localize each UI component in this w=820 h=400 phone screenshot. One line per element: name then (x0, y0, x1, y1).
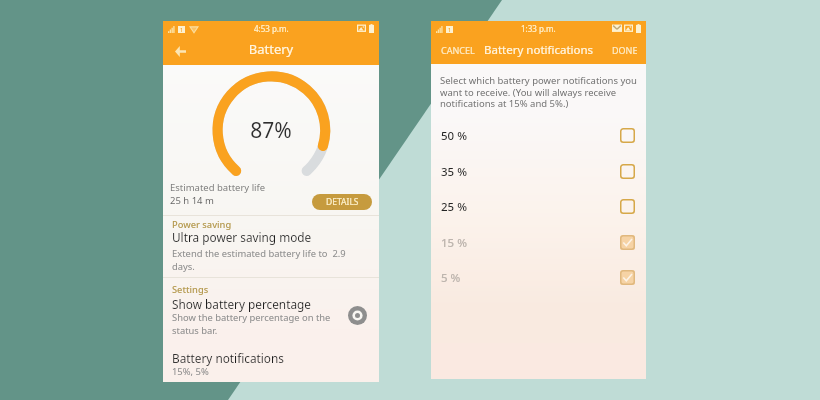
button[interactable]: Battery notifications (172, 350, 284, 366)
staticText: 15 % (441, 235, 467, 251)
staticText: 87% (163, 116, 379, 145)
staticText: Select which battery power notifications… (440, 74, 637, 110)
button[interactable]: 35 % (431, 154, 646, 189)
staticText: DONE (612, 44, 638, 56)
staticText: Power saving (172, 218, 232, 231)
staticText: 35 % (441, 164, 467, 180)
staticText: 50 % (441, 128, 467, 144)
button[interactable]: 50 % (431, 118, 646, 153)
staticText: DETAILS (326, 196, 359, 208)
button[interactable]: Show battery percentage option (348, 306, 367, 325)
button[interactable]: 25 % (431, 189, 646, 224)
button[interactable]: DONE (612, 44, 638, 56)
staticText: Ultra power saving mode (172, 229, 312, 245)
staticText: Estimated battery life (170, 181, 266, 194)
staticText: 1 (448, 26, 452, 33)
button[interactable]: 15 % (431, 225, 646, 260)
staticText: 4:53 p.m. (254, 23, 289, 34)
staticText: 25 h 14 m (170, 194, 214, 207)
staticText: Show battery percentage (172, 296, 311, 312)
staticText: Extend the estimated battery life to 2.9… (172, 247, 346, 272)
staticText: Battery notifications (484, 42, 594, 58)
staticText: Settings (172, 283, 209, 296)
button[interactable]: CANCEL (441, 44, 475, 56)
staticText: Show the battery percentage on the statu… (172, 311, 331, 336)
button[interactable] (163, 232, 379, 270)
staticText: Battery (163, 40, 379, 65)
button[interactable]: DETAILS (312, 194, 372, 210)
button[interactable]: 5 % (431, 260, 646, 295)
button[interactable]: Back (165, 37, 195, 65)
staticText: 1:33 p.m. (521, 23, 556, 34)
staticText: CANCEL (441, 44, 475, 56)
staticText: 15%, 5% (172, 365, 209, 378)
staticText: 25 % (441, 199, 467, 215)
staticText: 5 % (441, 270, 461, 286)
staticText: 1 (180, 26, 184, 33)
